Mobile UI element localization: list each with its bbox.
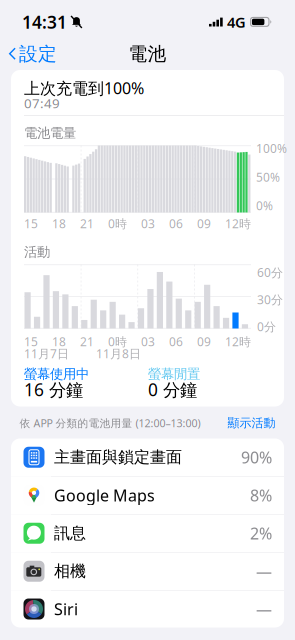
staticText: 11月8日 — [96, 345, 141, 361]
button[interactable]: 顯示活動 — [227, 416, 275, 429]
staticText: 60分 — [257, 264, 283, 280]
staticText: 07:49 — [24, 94, 60, 112]
button[interactable]: 設定 — [0, 36, 63, 71]
staticText: 90% — [241, 447, 272, 468]
staticText: — — [256, 561, 272, 582]
staticText: 螢幕閒置 — [148, 366, 200, 382]
staticText: — — [256, 598, 272, 620]
staticText: 100% — [256, 140, 287, 156]
staticText: 上次充電到100% — [24, 77, 144, 99]
staticText: 12時 — [225, 333, 251, 349]
staticText: 8% — [250, 485, 272, 506]
staticText: 2% — [250, 523, 272, 544]
staticText: 21 — [80, 215, 94, 231]
button[interactable]: 相機 — [11, 552, 284, 590]
staticText: 50% — [256, 169, 280, 185]
staticText: 30分 — [257, 291, 283, 307]
staticText: 06 — [169, 215, 183, 231]
staticText: 設定 — [19, 42, 57, 65]
staticText: 0時 — [108, 333, 127, 349]
staticText: 18 — [52, 333, 66, 349]
button[interactable]: 主畫面與鎖定畫面 — [11, 438, 284, 476]
staticText: 0 分鐘 — [148, 378, 197, 401]
staticText: 電池 — [128, 42, 166, 65]
staticText: 18 — [52, 215, 66, 231]
staticText: 相機 — [54, 561, 86, 581]
staticText: 依 APP 分類的電池用量 (12:00–13:00) — [19, 416, 200, 430]
staticText: 12時 — [225, 215, 251, 231]
staticText: 16 分鐘 — [24, 378, 83, 401]
staticText: 主畫面與鎖定畫面 — [54, 447, 182, 467]
staticText: Google Maps — [54, 485, 155, 506]
staticText: 14:31 — [22, 10, 67, 33]
staticText: 顯示活動 — [227, 416, 275, 430]
staticText: 0分 — [257, 319, 276, 334]
button[interactable]: Siri — [11, 590, 284, 627]
staticText: 09 — [197, 333, 211, 349]
staticText: 活動 — [24, 244, 50, 260]
staticText: Siri — [54, 598, 78, 620]
staticText: 訊息 — [54, 523, 86, 543]
staticText: 06 — [169, 333, 183, 349]
staticText: 電池電量 — [24, 125, 76, 141]
staticText: 03 — [141, 333, 155, 349]
button[interactable]: 訊息 — [11, 514, 284, 552]
staticText: 0% — [256, 198, 273, 213]
staticText: 4G — [227, 12, 246, 32]
staticText: 15 — [24, 215, 38, 231]
staticText: 03 — [141, 215, 155, 231]
staticText: 09 — [197, 215, 211, 231]
staticText: 21 — [80, 333, 94, 349]
staticText: 0時 — [108, 215, 127, 231]
staticText: 11月7日 — [24, 345, 69, 361]
staticText: 15 — [24, 333, 38, 349]
button[interactable]: Google Maps — [11, 476, 284, 514]
staticText: 螢幕使用中 — [24, 366, 89, 382]
